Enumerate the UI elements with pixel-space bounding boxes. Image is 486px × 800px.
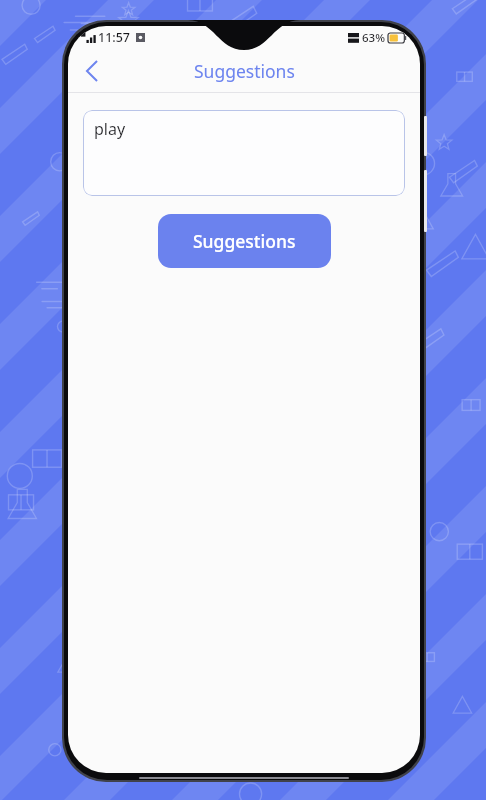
button[interactable]: Back [72,51,112,91]
staticText: 63% [362,30,385,46]
staticText: play [94,118,126,140]
button[interactable]: Suggestions [158,214,331,268]
staticText: 11:57 [98,29,131,46]
staticText: Suggestions [194,59,295,83]
staticText: Suggestions [193,229,296,253]
button[interactable]: play [83,110,405,196]
